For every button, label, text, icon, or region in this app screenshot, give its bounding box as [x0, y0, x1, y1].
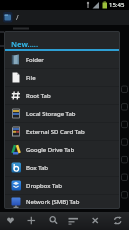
staticText: / — [16, 13, 19, 23]
button[interactable] — [0, 212, 20, 230]
button[interactable]: Local Storage Tab — [4, 105, 120, 122]
staticText: External SD Card Tab — [26, 128, 85, 136]
button[interactable]: External SD Card Tab — [4, 123, 120, 140]
staticText: 15:45 — [109, 1, 125, 9]
button[interactable] — [63, 212, 83, 230]
staticText: File — [26, 74, 36, 82]
button[interactable]: Network (SMB) Tab — [4, 195, 120, 209]
staticText: Local Storage Tab — [26, 110, 76, 118]
staticText: New..... — [11, 39, 39, 49]
button[interactable]: Google Drive Tab — [4, 141, 120, 158]
staticText: Box Tab — [26, 164, 49, 172]
staticText: Google Drive Tab — [26, 146, 75, 154]
button[interactable]: Folder — [4, 51, 120, 68]
button[interactable]: / — [0, 10, 129, 25]
button[interactable]: Dropbox Tab — [4, 177, 120, 194]
button[interactable] — [21, 212, 41, 230]
staticText: Root Tab — [26, 92, 51, 100]
staticText: Network (SMB) Tab — [26, 198, 80, 206]
button[interactable]: Root Tab — [4, 87, 120, 104]
button[interactable]: Box Tab — [4, 159, 120, 176]
staticText: Dropbox Tab — [26, 182, 62, 190]
button[interactable] — [43, 212, 63, 230]
button[interactable]: File — [4, 69, 120, 86]
staticText: Folder — [26, 56, 44, 64]
button[interactable] — [107, 212, 127, 230]
button[interactable] — [85, 212, 105, 230]
